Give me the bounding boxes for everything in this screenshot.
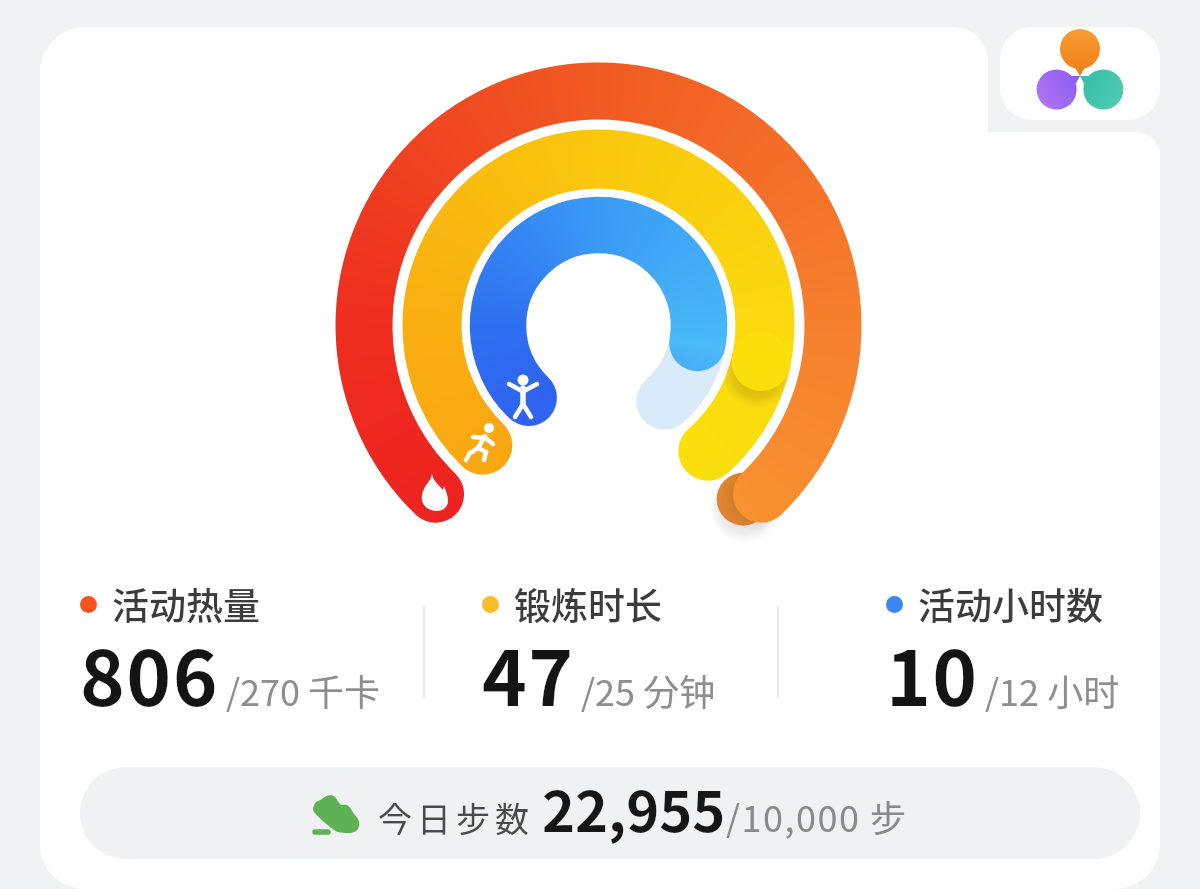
button[interactable]: 锻炼时长: [482, 577, 716, 741]
staticText: 活动小时数: [918, 577, 1103, 631]
staticText: 47: [482, 618, 575, 728]
staticText: /12 小时: [985, 664, 1120, 716]
button[interactable]: 今日步数: [80, 767, 1140, 859]
staticText: 22,955: [542, 767, 726, 848]
staticText: 活动热量: [112, 577, 260, 631]
staticText: 今日步数: [378, 793, 534, 842]
staticText: 锻炼时长: [514, 577, 662, 631]
button[interactable]: 活动小时数: [886, 577, 1120, 741]
staticText: 10: [886, 618, 979, 728]
staticText: /25 分钟: [581, 664, 716, 716]
staticText: 806: [80, 618, 220, 728]
button[interactable]: 活动热量: [80, 577, 381, 741]
button[interactable]: [1000, 27, 1160, 120]
staticText: /270 千卡: [226, 664, 381, 716]
staticText: /10,000 步: [726, 790, 908, 842]
